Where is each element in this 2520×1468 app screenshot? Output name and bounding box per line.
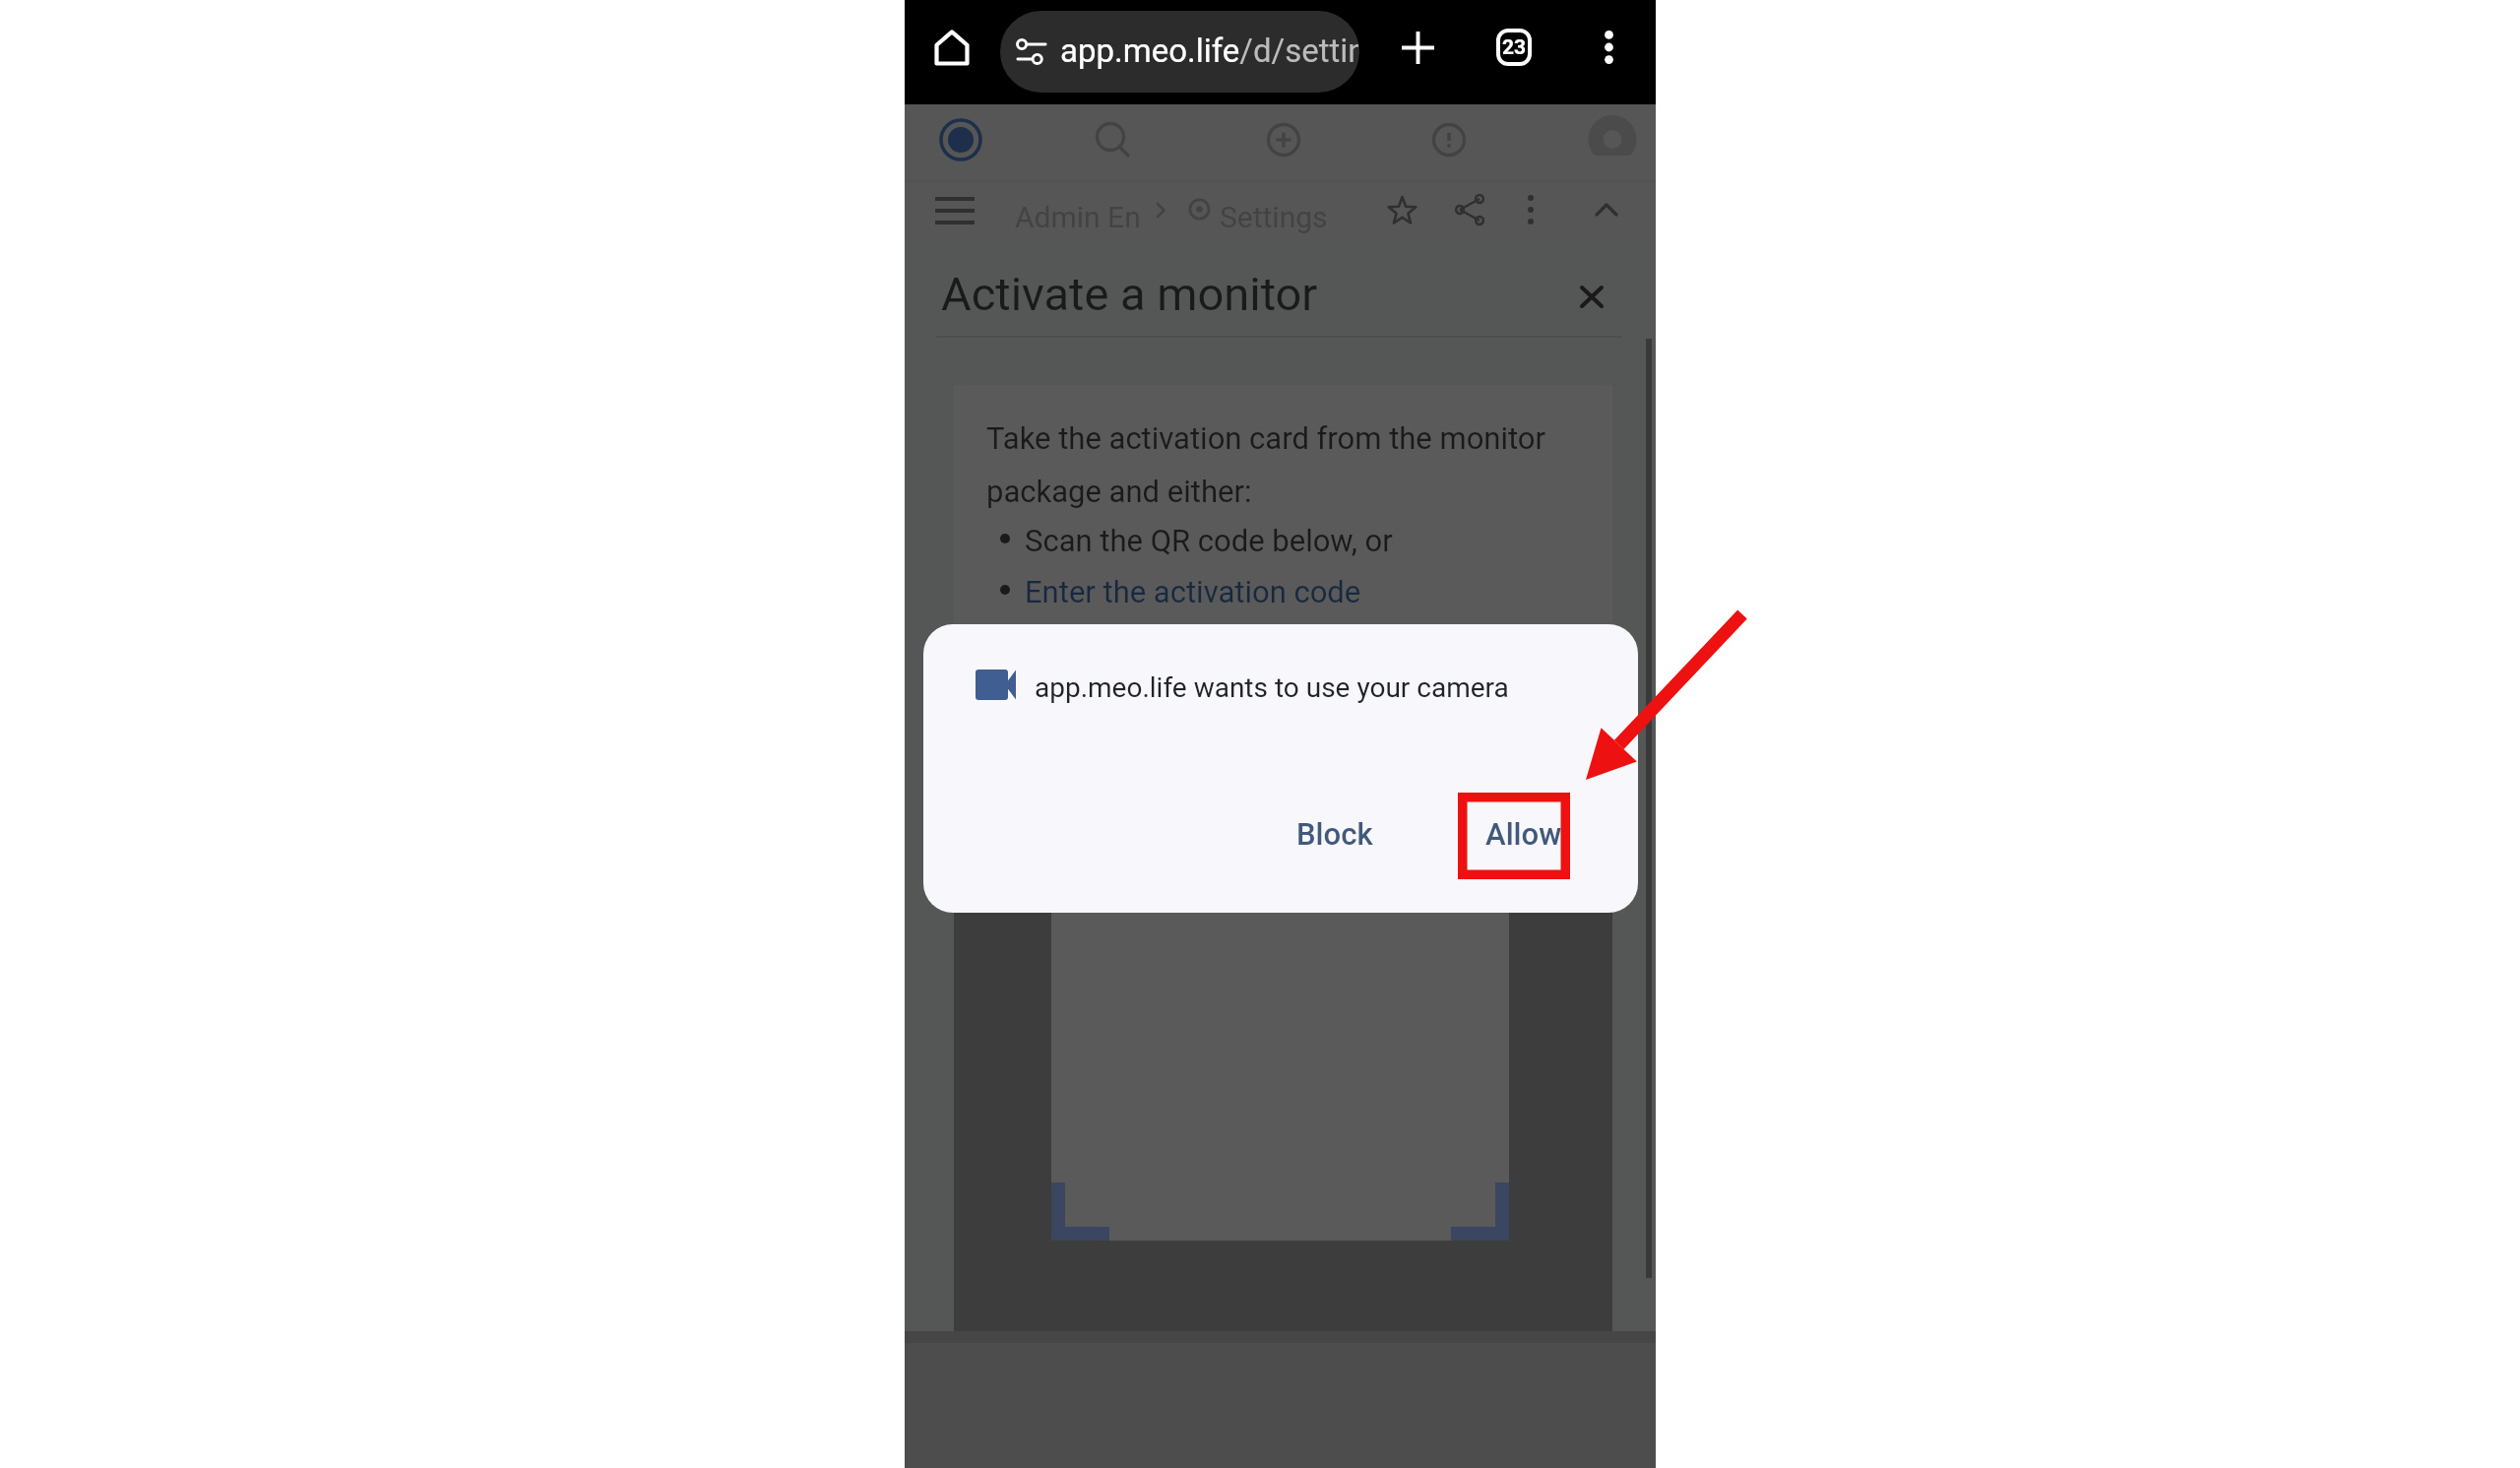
button[interactable]: Home <box>919 15 984 80</box>
button[interactable]: Search <box>1080 107 1145 172</box>
button[interactable]: Account <box>1580 107 1645 172</box>
button[interactable]: Tabs <box>1481 15 1546 80</box>
staticText: Block <box>1296 816 1373 852</box>
staticText: Take the activation card from the monito… <box>986 420 1552 509</box>
button[interactable]: Enter the activation code <box>1025 569 1361 616</box>
staticText: Enter the activation code <box>1025 574 1361 609</box>
staticText: 23 <box>1502 35 1527 60</box>
button[interactable]: Share <box>1444 184 1495 235</box>
button[interactable]: Close <box>1565 270 1618 323</box>
button[interactable]: Block <box>1271 795 1399 873</box>
staticText: Allow <box>1485 816 1562 852</box>
button[interactable]: Allow <box>1460 795 1588 873</box>
button[interactable]: New tab <box>1385 15 1450 80</box>
button[interactable]: More <box>1505 184 1556 235</box>
button[interactable]: Home <box>928 107 993 172</box>
button[interactable]: Admin En <box>1015 190 1141 229</box>
staticText: Scan the QR code below, or <box>1025 523 1393 558</box>
button[interactable]: Settings <box>1220 190 1328 229</box>
button[interactable]: Help <box>1417 107 1481 172</box>
button[interactable]: More options <box>1576 15 1641 80</box>
button[interactable]: app.meo.life/d/settings <box>1000 11 1359 93</box>
button[interactable]: Collapse <box>1581 184 1632 235</box>
staticText: app.meo.life wants to use your camera <box>1035 671 1509 704</box>
button[interactable]: Add <box>1251 107 1316 172</box>
staticText: app.meo.life/d/settings <box>1060 32 1358 70</box>
staticText: Admin En <box>1015 200 1141 234</box>
button[interactable]: Bookmark <box>1376 184 1427 235</box>
staticText: Activate a monitor <box>941 267 1318 321</box>
button[interactable]: Menu <box>927 183 981 237</box>
staticText: Settings <box>1220 200 1328 234</box>
